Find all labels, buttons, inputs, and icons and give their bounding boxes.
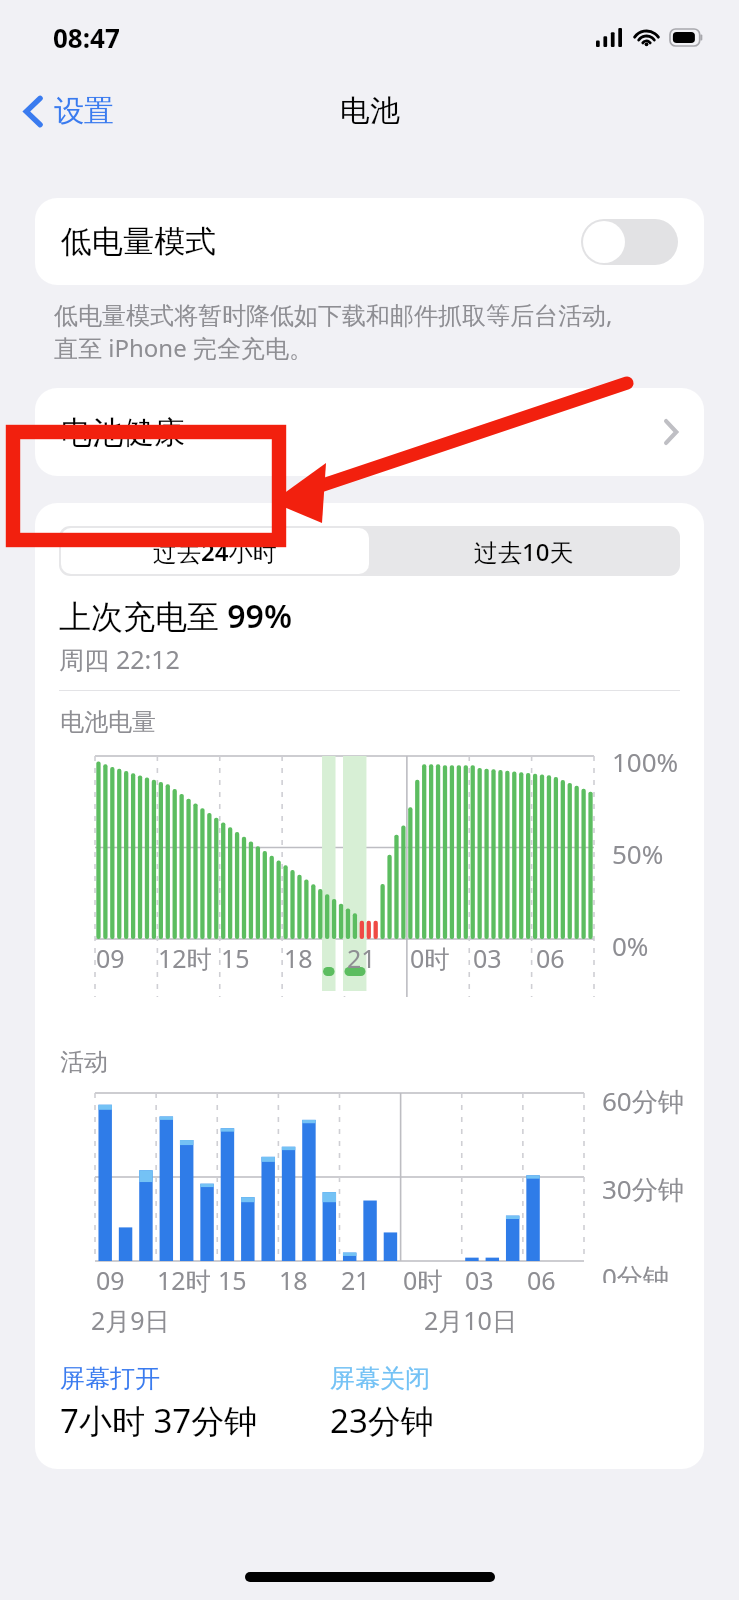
- staticText: 直至 iPhone 完全充电。: [54, 331, 313, 364]
- staticText: 09: [96, 941, 125, 975]
- staticText: 30分钟: [602, 1171, 684, 1207]
- staticText: 03: [473, 941, 502, 975]
- staticText: 100%: [612, 744, 679, 779]
- button[interactable]: 过去10天: [369, 528, 678, 574]
- staticText: 12时: [157, 1263, 211, 1297]
- staticText: 低电量模式将暂时降低如下载和邮件抓取等后台活动,: [54, 298, 613, 331]
- staticText: 过去10天: [474, 535, 574, 568]
- staticText: 15: [221, 941, 250, 975]
- staticText: 03: [465, 1263, 494, 1297]
- staticText: 0时: [410, 941, 450, 975]
- staticText: 21: [341, 1263, 370, 1297]
- staticText: 0时: [403, 1263, 443, 1297]
- staticText: 08:47: [53, 20, 120, 55]
- staticText: 60分钟: [602, 1083, 684, 1119]
- button[interactable]: 低电量模式开关: [581, 219, 678, 265]
- staticText: 23分钟: [330, 1398, 434, 1443]
- button[interactable]: 过去24小时: [61, 528, 369, 574]
- staticText: 15: [218, 1263, 247, 1297]
- staticText: 电池: [340, 92, 400, 130]
- staticText: 屏幕打开: [60, 1363, 160, 1394]
- staticText: 屏幕关闭: [330, 1363, 430, 1394]
- staticText: 06: [536, 941, 565, 975]
- staticText: 2月9日: [91, 1303, 424, 1337]
- staticText: 低电量模式: [61, 222, 581, 261]
- staticText: 50%: [612, 836, 664, 871]
- staticText: 06: [527, 1263, 556, 1297]
- staticText: 09: [96, 1263, 125, 1297]
- staticText: 0分钟: [602, 1259, 669, 1283]
- staticText: 21: [347, 941, 376, 975]
- staticText: 22:12: [116, 642, 180, 676]
- staticText: 过去24小时: [153, 535, 277, 568]
- staticText: 0%: [612, 928, 649, 963]
- staticText: 上次充电至 99%: [59, 594, 292, 638]
- staticText: 电池健康: [61, 413, 664, 452]
- staticText: 18: [284, 941, 313, 975]
- staticText: 活动: [60, 1047, 108, 1077]
- staticText: 设置: [54, 92, 114, 130]
- staticText: 7小时 37分钟: [60, 1398, 258, 1443]
- button[interactable]: 电池健康: [35, 388, 704, 476]
- staticText: 18: [279, 1263, 308, 1297]
- staticText: 12时: [158, 941, 212, 975]
- staticText: 周四: [59, 642, 116, 676]
- staticText: 电池电量: [60, 707, 156, 737]
- button[interactable]: 设置: [18, 86, 120, 136]
- staticText: 2月10日: [424, 1303, 517, 1337]
- button[interactable]: 低电量模式: [35, 198, 704, 285]
